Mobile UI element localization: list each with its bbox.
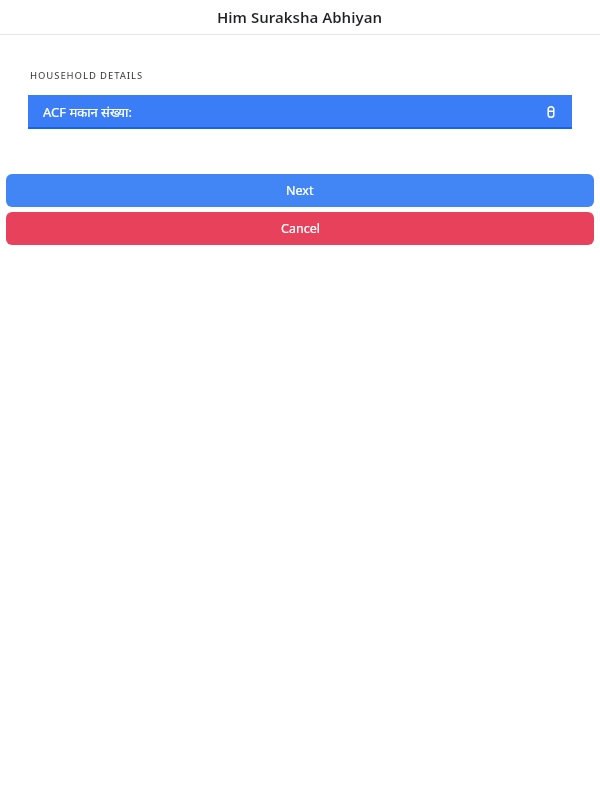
button[interactable]: Next [6,174,594,207]
button[interactable]: Open picker [544,105,558,119]
button[interactable]: Cancel [6,212,594,245]
staticText: ACF मकान संख्या: [43,103,132,121]
staticText: Next [286,182,314,199]
staticText: Cancel [281,220,320,237]
button[interactable]: ACF मकान संख्या: [28,95,572,129]
staticText: HOUSEHOLD DETAILS [30,69,144,82]
staticText: Him Suraksha Abhiyan [217,7,383,27]
